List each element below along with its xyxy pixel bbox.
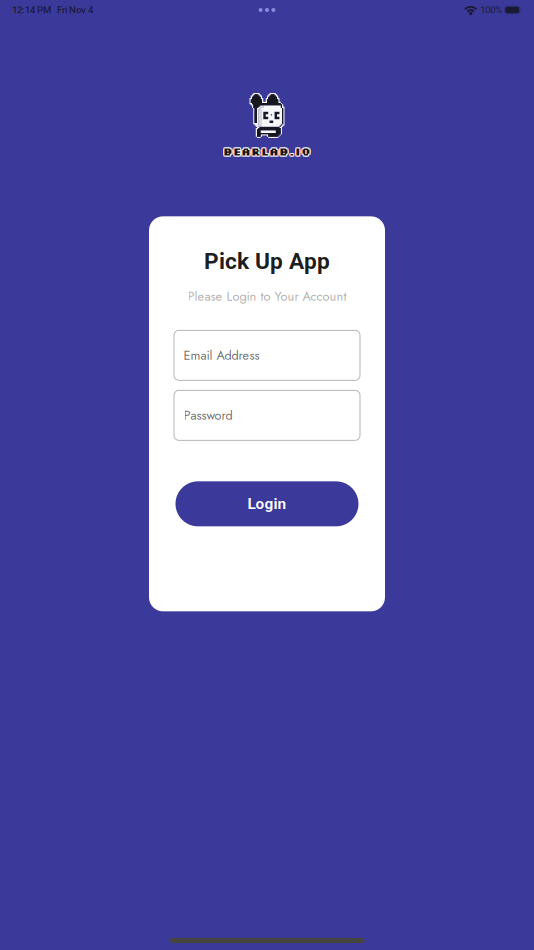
staticText: 12:14 PM — [12, 4, 51, 16]
staticText: BEARLAB.IO — [222, 143, 310, 157]
button[interactable]: Login — [175, 481, 358, 526]
staticText: Login — [247, 495, 286, 513]
staticText: BEARLAB.IO — [224, 143, 312, 157]
staticText: BEARLAB.IO — [224, 144, 312, 158]
staticText: BEARLAB.IO — [223, 144, 311, 158]
staticText: Please Login to Your Account — [187, 287, 346, 306]
staticText: Fri Nov 4 — [51, 4, 93, 16]
staticText: Password — [183, 406, 232, 424]
staticText: BEARLAB.IO — [222, 144, 310, 158]
staticText: BEARLAB.IO — [222, 145, 310, 159]
staticText: Email Address — [183, 346, 259, 364]
staticText: BEARLAB.IO — [223, 143, 311, 157]
staticText: Pick Up App — [204, 248, 330, 275]
staticText: 100% — [476, 4, 504, 16]
staticText: BEARLAB.IO — [224, 145, 312, 159]
staticText: BEARLAB.IO — [223, 145, 311, 159]
button[interactable]: Email Address — [174, 330, 360, 380]
button[interactable]: Password — [174, 390, 360, 440]
